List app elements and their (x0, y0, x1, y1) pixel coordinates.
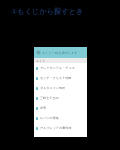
staticText: アルフレッドの事件簿 (40, 126, 72, 130)
other: Menu (37, 51, 40, 54)
staticText: もくじ一覧を表示します (42, 51, 78, 55)
button[interactable]: ダルタニャン物語 (34, 83, 87, 93)
button[interactable]: モンテ・クリスト伯爵 (34, 73, 87, 83)
staticText: 赤毛 (40, 106, 47, 110)
staticText: ①もくじから探すとき (11, 7, 84, 16)
button[interactable]: アルフレッドの事件簿 (34, 123, 87, 133)
staticText: ルパンの冒険 (40, 116, 59, 120)
staticText: アレクサンドル・デュマ (40, 66, 75, 70)
button[interactable]: 赤毛 (34, 103, 87, 113)
button[interactable]: Menu (34, 47, 87, 58)
button[interactable]: アレクサンドル・デュマ (34, 63, 87, 73)
button[interactable]: ルパンの冒険 (34, 113, 87, 123)
staticText: モンテ・クリスト伯爵 (40, 76, 72, 80)
staticText: ダルタニャン物語 (40, 86, 66, 90)
staticText: 三銃士と王妃 (40, 96, 59, 100)
button[interactable]: 三銃士と王妃 (34, 93, 87, 103)
staticText: もくじ (36, 59, 46, 63)
